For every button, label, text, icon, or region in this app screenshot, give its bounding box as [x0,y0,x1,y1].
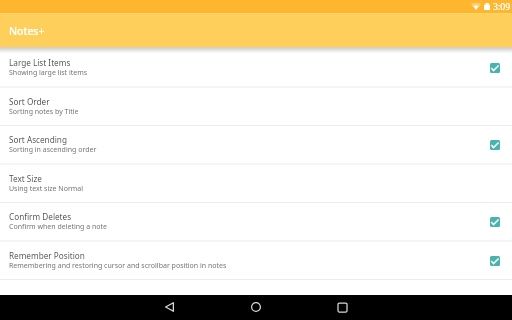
button[interactable]: Sort Ascending [490,140,500,150]
staticText: Sort Ascending [9,134,67,145]
button[interactable]: Large List Items [490,63,500,73]
button[interactable]: Sort Order [0,87,512,126]
button[interactable]: Sort Ascending [0,125,512,164]
button[interactable]: Recent apps [325,295,360,319]
button[interactable]: Confirm Deletes [490,217,500,227]
button[interactable]: Back [152,295,187,319]
staticText: Sort Order [9,96,50,107]
staticText: Confirm when deleting a note [9,222,107,232]
staticText: Large List Items [9,57,71,68]
staticText: Confirm Deletes [9,211,72,222]
button[interactable]: Home [238,295,273,319]
button[interactable]: Text Size [0,164,512,203]
staticText: Using text size Normal [9,184,84,194]
staticText: Remember Position [9,250,85,261]
staticText: Remembering and restoring cursor and scr… [9,261,227,271]
staticText: Sorting in ascending order [9,145,97,155]
staticText: Notes+ [9,24,45,38]
button[interactable]: Remember Position [490,256,500,266]
button[interactable]: Large List Items [0,48,512,87]
staticText: Text Size [9,173,42,184]
button[interactable]: Confirm Deletes [0,202,512,241]
button[interactable]: Remember Position [0,241,512,280]
staticText: 3:09 [493,1,511,13]
staticText: Sorting notes by Title [9,107,79,117]
staticText: Showing large list items [9,68,88,78]
